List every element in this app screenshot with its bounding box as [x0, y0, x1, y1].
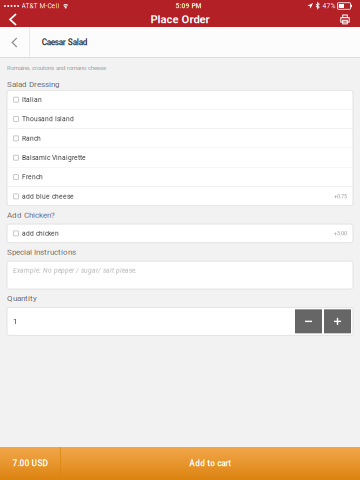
staticText: add chicken	[22, 229, 59, 237]
staticText: Ranch	[22, 134, 41, 142]
staticText: Quantity	[7, 293, 37, 303]
staticText: +3.00	[334, 230, 347, 237]
button[interactable]: Decrease quantity	[295, 309, 322, 333]
staticText: Special Instructions	[7, 247, 76, 257]
staticText: French	[22, 173, 43, 181]
staticText: Salad Dressing	[7, 79, 59, 89]
staticText: 7.00 USD	[12, 459, 47, 468]
button[interactable]: 7.00 USD	[0, 447, 60, 480]
button[interactable]: Back	[0, 12, 26, 27]
staticText: Caesar Salad	[42, 38, 88, 47]
button[interactable]: Thousand Island	[7, 110, 353, 128]
button[interactable]: Balsamic Vinaigrette	[7, 148, 353, 167]
button[interactable]: Back	[0, 27, 29, 58]
button[interactable]: Print	[330, 12, 360, 27]
staticText: 1	[13, 317, 17, 326]
staticText: Add Chicken?	[7, 210, 55, 220]
button[interactable]: Increase quantity	[324, 309, 351, 333]
button[interactable]: Add to cart	[61, 447, 360, 480]
staticText: Add to cart	[189, 459, 231, 468]
staticText: AT&T M-Cell	[21, 2, 59, 10]
staticText: Thousand Island	[22, 115, 74, 123]
button[interactable]: add chicken	[7, 224, 353, 243]
staticText: Balsamic Vinaigrette	[22, 154, 86, 162]
staticText: 5:09 PM	[175, 2, 201, 10]
button[interactable]: add blue cheese	[7, 187, 353, 206]
button[interactable]: Ranch	[7, 129, 353, 148]
staticText: Example: No pepper / sugar/ salt please.	[13, 267, 137, 274]
staticText: Place Order	[150, 13, 209, 26]
button[interactable]: Example: No pepper / sugar/ salt please.	[7, 261, 353, 289]
staticText: Italian	[22, 96, 42, 103]
button[interactable]: French	[7, 168, 353, 186]
staticText: 47%	[322, 2, 335, 10]
staticText: add blue cheese	[22, 192, 74, 200]
staticText: Romaine, croutons and romano cheese	[7, 64, 106, 72]
staticText: +0.75	[334, 193, 347, 200]
button[interactable]: Italian	[7, 90, 353, 109]
